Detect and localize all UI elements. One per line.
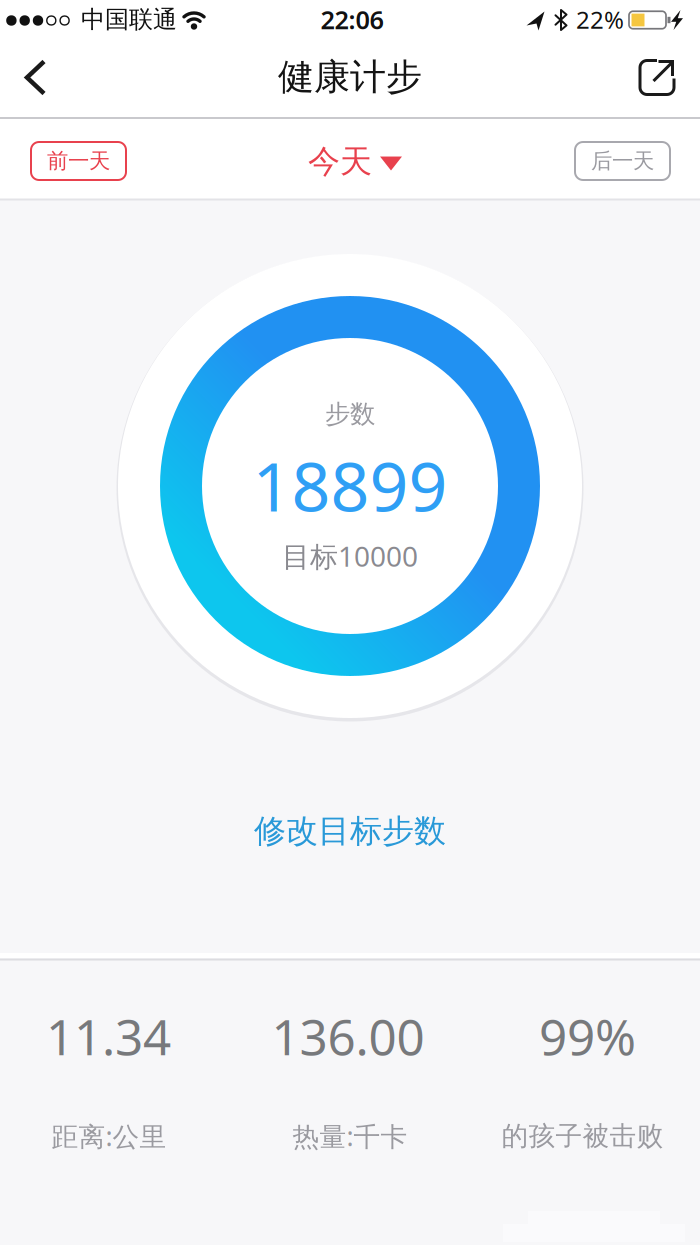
staticText: 18899 <box>252 440 447 530</box>
button[interactable]: 今天 <box>308 142 402 181</box>
button[interactable]: 修改目标步数 <box>254 811 446 851</box>
staticText: 热量:千卡 <box>292 1118 407 1154</box>
staticText: 距离:公里 <box>51 1118 166 1154</box>
staticText: 步数 <box>325 398 375 429</box>
staticText: 后一天 <box>591 148 654 174</box>
staticText: 修改目标步数 <box>254 811 446 851</box>
staticText: 99% <box>539 1003 636 1069</box>
button[interactable]: 前一天 <box>31 142 126 180</box>
staticText: 健康计步 <box>278 55 422 99</box>
staticText: 今天 <box>308 142 372 181</box>
button[interactable]: Share <box>636 56 678 98</box>
staticText: 中国联通 <box>81 5 177 34</box>
button[interactable]: 后一天 <box>575 142 670 180</box>
staticText: 的孩子被击败 <box>501 1120 663 1152</box>
button[interactable]: Back <box>20 55 54 100</box>
staticText: 22:06 <box>320 3 383 36</box>
staticText: 11.34 <box>46 1003 171 1069</box>
staticText: 136.00 <box>271 1003 424 1069</box>
staticText: 目标10000 <box>282 537 418 575</box>
staticText: 前一天 <box>47 148 110 174</box>
staticText: 22% <box>576 4 624 35</box>
